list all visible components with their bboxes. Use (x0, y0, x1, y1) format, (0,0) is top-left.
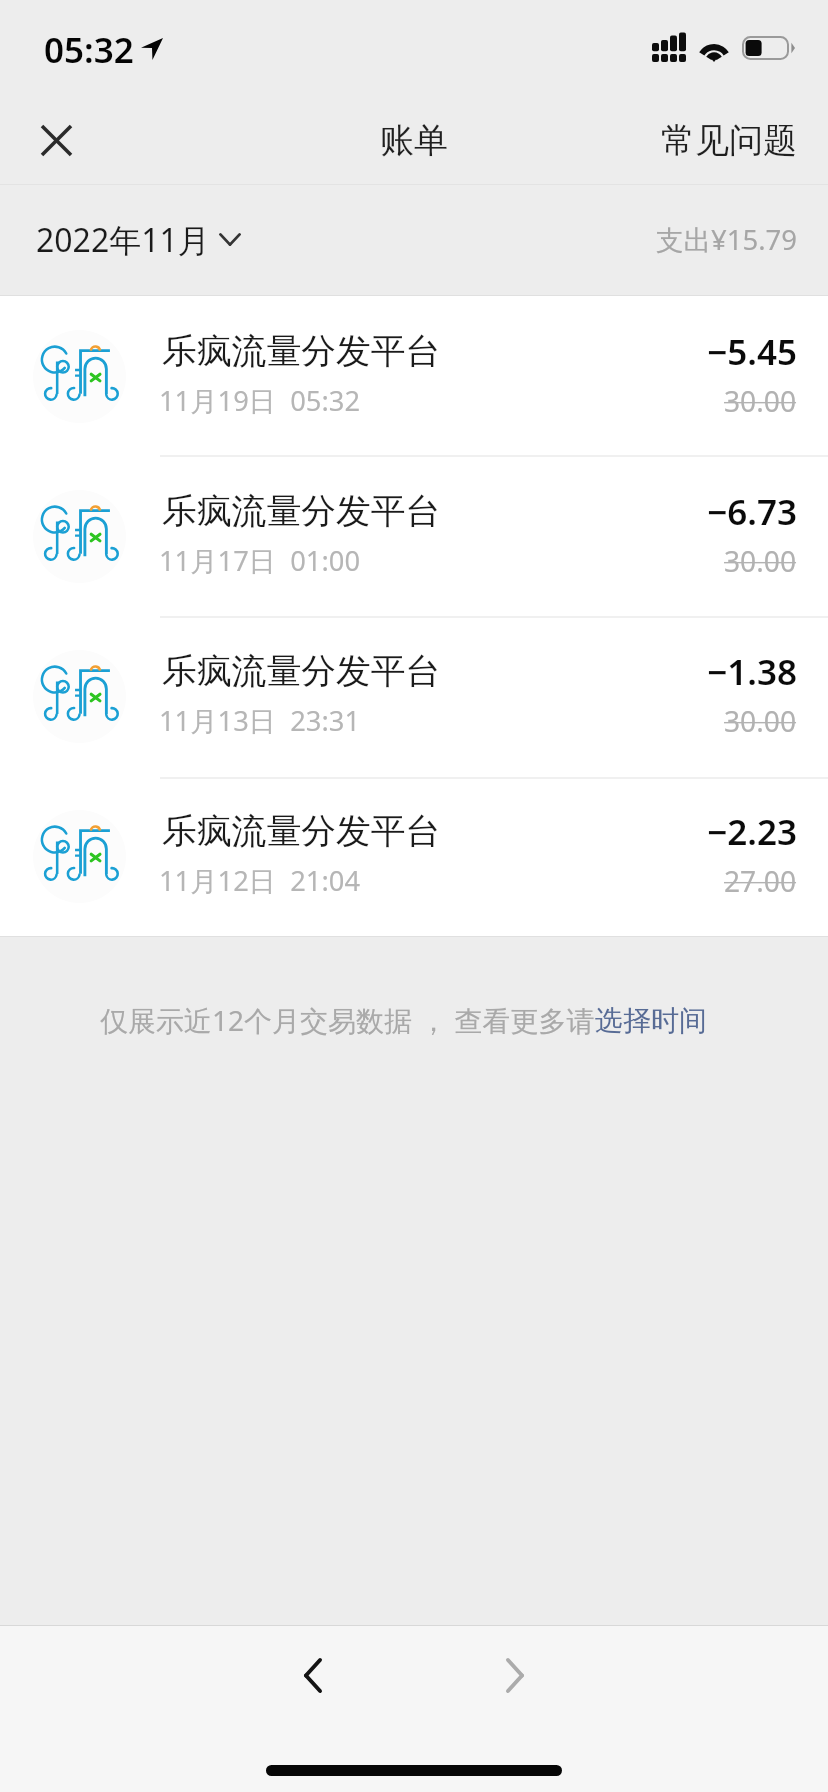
button[interactable]: Close (23, 107, 89, 173)
staticText: −2.23 (707, 808, 797, 856)
staticText: 11月17日 01:00 (159, 542, 361, 579)
staticText: 账单 (380, 119, 448, 162)
staticText: 11月19日 05:32 (159, 382, 361, 419)
staticText: 选择时间 (595, 1003, 707, 1038)
button[interactable]: 2022年11月 (0, 218, 261, 262)
staticText: 乐疯流量分发平台 (162, 329, 441, 373)
staticText: 乐疯流量分发平台 (162, 649, 441, 693)
button[interactable]: 乐疯流量分发平台 (0, 616, 828, 776)
staticText: −5.45 (707, 328, 797, 376)
staticText: 30.00 (724, 382, 797, 420)
staticText: 乐疯流量分发平台 (162, 489, 441, 533)
button[interactable]: Back (268, 1630, 358, 1720)
staticText: 27.00 (724, 862, 797, 900)
staticText: 2022年11月 (36, 218, 210, 262)
button[interactable]: 乐疯流量分发平台 (0, 296, 828, 456)
staticText: −1.38 (707, 648, 797, 696)
button[interactable]: 乐疯流量分发平台 (0, 456, 828, 616)
staticText: 30.00 (724, 542, 797, 580)
button[interactable]: 乐疯流量分发平台 (0, 776, 828, 936)
staticText: 乐疯流量分发平台 (162, 809, 441, 853)
button[interactable]: 选择时间 (595, 1003, 707, 1038)
staticText: 11月12日 21:04 (159, 862, 361, 899)
staticText: 30.00 (724, 702, 797, 740)
button[interactable]: Forward (470, 1630, 560, 1720)
staticText: 支出¥15.79 (656, 221, 798, 259)
button[interactable]: 常见问题 (627, 105, 828, 176)
staticText: −6.73 (707, 488, 797, 536)
staticText: 常见问题 (661, 119, 797, 162)
staticText: 11月13日 23:31 (159, 702, 361, 739)
staticText: 仅展示近12个月交易数据 ， 查看更多请 (100, 1001, 595, 1039)
staticText: 05:32 (44, 26, 134, 74)
